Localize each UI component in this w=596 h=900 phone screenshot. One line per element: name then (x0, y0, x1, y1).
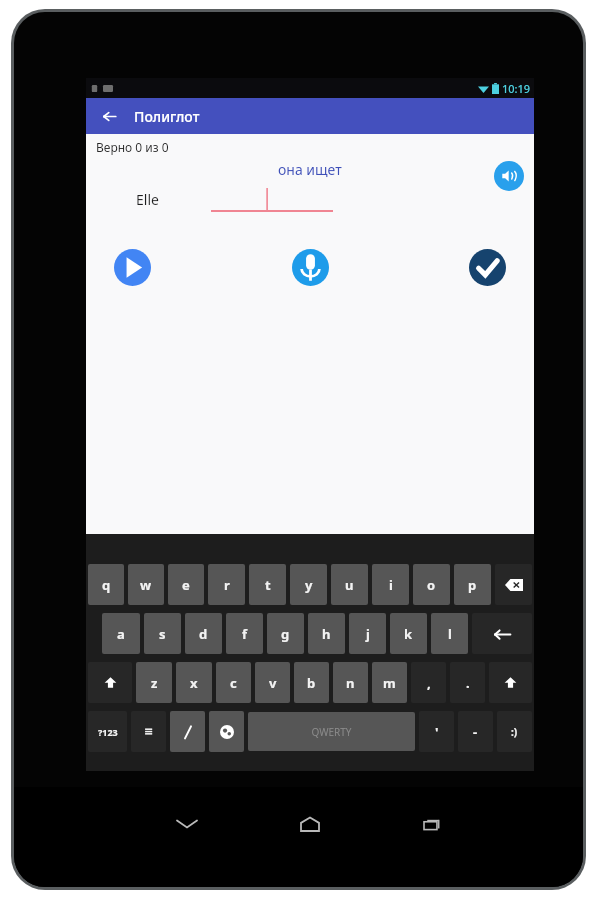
staticText: i (389, 576, 393, 594)
staticText: :) (511, 725, 518, 739)
staticText: c (230, 674, 237, 692)
staticText: 10:19 (502, 81, 531, 96)
button[interactable]: z (136, 662, 172, 703)
staticText: x (190, 674, 198, 692)
button[interactable]: d (185, 613, 222, 654)
button[interactable]: q (88, 564, 124, 605)
button[interactable]: ?123 (88, 711, 127, 752)
button[interactable]: SLASH (170, 711, 205, 752)
button[interactable]: v (255, 662, 290, 703)
button[interactable]: Recent apps (411, 809, 455, 839)
button[interactable]: e (168, 564, 204, 605)
button[interactable]: i (372, 564, 409, 605)
button[interactable]: BACKSPACE (495, 564, 532, 605)
button[interactable]: w (128, 564, 164, 605)
staticText: j (366, 625, 370, 643)
button[interactable]: s (144, 613, 181, 654)
staticText: y (305, 576, 313, 594)
button[interactable]: :) (497, 711, 532, 752)
button[interactable]: . (450, 662, 485, 703)
button[interactable]: GLOBE (209, 711, 244, 752)
button[interactable]: Play audio (494, 161, 524, 191)
button[interactable]: Home (288, 809, 332, 839)
staticText: z (151, 674, 158, 692)
button[interactable]: Record (292, 249, 329, 286)
button[interactable]: ' (419, 711, 454, 752)
button[interactable]: , (411, 662, 446, 703)
button[interactable]: n (333, 662, 368, 703)
button[interactable]: p (454, 564, 491, 605)
button[interactable]: Play (114, 249, 151, 286)
staticText: e (182, 576, 190, 594)
button[interactable]: SHIFT (88, 662, 132, 703)
button[interactable]: a (102, 613, 140, 654)
staticText: p (468, 576, 477, 594)
staticText: - (473, 723, 478, 741)
staticText: b (307, 674, 316, 692)
button[interactable]: u (331, 564, 368, 605)
staticText: h (322, 625, 331, 643)
staticText: ' (435, 723, 439, 741)
staticText: Полиглот (134, 107, 200, 126)
staticText: m (383, 674, 396, 692)
staticText: ≡ (144, 725, 154, 738)
staticText: o (427, 576, 436, 594)
staticText: она ищет (278, 160, 342, 179)
button[interactable]: h (308, 613, 345, 654)
staticText: d (199, 625, 208, 643)
button[interactable]: b (294, 662, 329, 703)
button[interactable]: Back (96, 103, 122, 129)
button[interactable]: y (290, 564, 327, 605)
staticText: q (102, 576, 111, 594)
staticText: s (159, 625, 166, 643)
button[interactable]: m (372, 662, 407, 703)
staticText: f (242, 625, 248, 643)
staticText: ?123 (98, 726, 118, 738)
button[interactable]: ≡ (131, 711, 166, 752)
staticText: Верно 0 из 0 (96, 139, 169, 155)
staticText: . (466, 674, 470, 692)
staticText: w (140, 576, 152, 594)
staticText: t (265, 576, 271, 594)
button[interactable]: g (267, 613, 304, 654)
staticText: u (345, 576, 354, 594)
button[interactable]: t (249, 564, 286, 605)
button[interactable]: QWERTY (248, 712, 415, 751)
button[interactable]: l (431, 613, 468, 654)
button[interactable]: x (176, 662, 212, 703)
staticText: k (404, 625, 413, 643)
staticText: l (448, 625, 452, 643)
staticText: Elle (136, 190, 159, 209)
staticText: v (269, 674, 277, 692)
button[interactable]: r (208, 564, 245, 605)
staticText: , (427, 674, 431, 692)
button[interactable]: - (458, 711, 493, 752)
staticText: g (281, 625, 290, 643)
button[interactable]: k (390, 613, 427, 654)
button[interactable]: ENTER (472, 613, 532, 654)
button[interactable]: SHIFT (489, 662, 532, 703)
button[interactable]: j (349, 613, 386, 654)
button[interactable]: f (226, 613, 263, 654)
staticText: r (224, 576, 230, 594)
button[interactable]: c (216, 662, 251, 703)
button[interactable]: Hide keyboard (165, 809, 209, 839)
staticText: n (346, 674, 355, 692)
staticText: a (117, 625, 125, 643)
staticText: QWERTY (311, 725, 352, 739)
button[interactable]: Check (469, 249, 506, 286)
button[interactable]: o (413, 564, 450, 605)
